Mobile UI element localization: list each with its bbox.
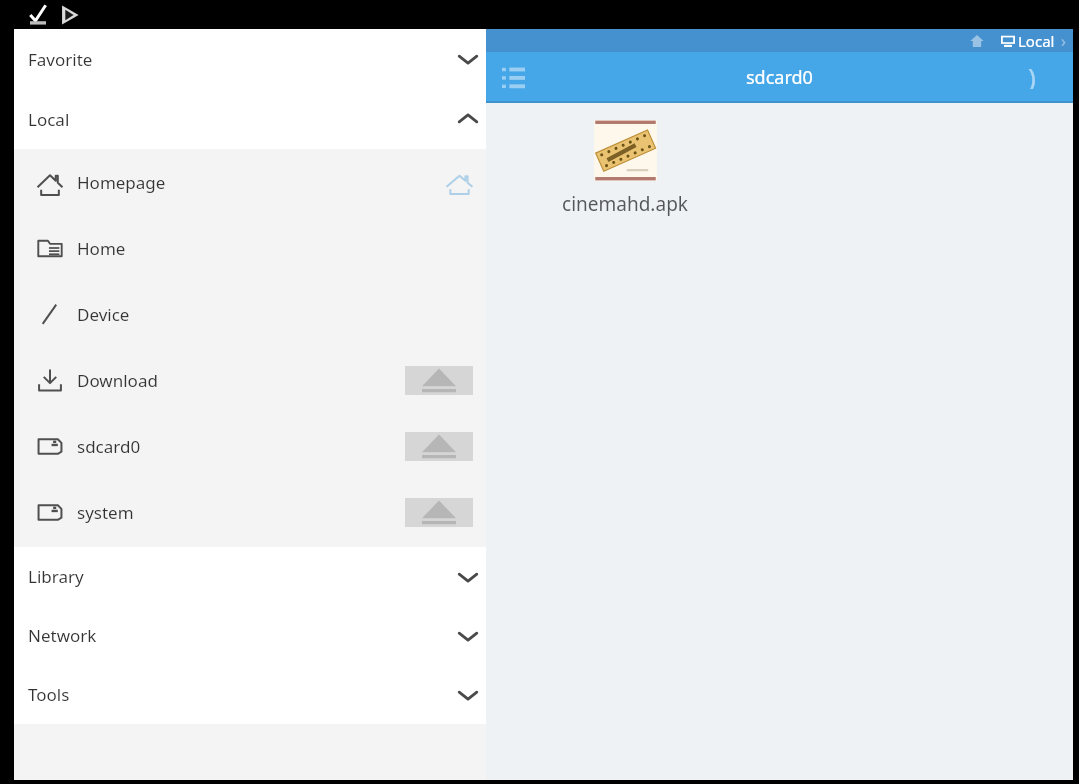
button[interactable]: system [14, 479, 486, 545]
button[interactable]: Home [967, 31, 987, 51]
staticText: sdcard0 [746, 65, 813, 90]
staticText: Device [77, 303, 130, 326]
staticText: Network [28, 624, 97, 647]
button[interactable]: Eject [405, 498, 473, 527]
staticText: ) [1028, 59, 1036, 89]
button[interactable]: Device [14, 281, 486, 347]
staticText: Local [28, 108, 70, 131]
staticText: Local [1018, 31, 1055, 51]
staticText: sdcard0 [77, 435, 141, 458]
button[interactable]: Home [14, 215, 486, 281]
staticText: Homepage [77, 171, 166, 194]
button[interactable]: Network [14, 606, 486, 665]
button[interactable]: More options [1017, 59, 1047, 89]
staticText: Home [77, 237, 126, 260]
button[interactable]: Local [14, 89, 486, 149]
button[interactable]: Local [1001, 31, 1055, 51]
staticText: Tools [28, 683, 70, 706]
button[interactable]: Tools [14, 665, 486, 724]
button[interactable]: Eject [405, 432, 473, 461]
button[interactable]: sdcard0 [14, 413, 486, 479]
button[interactable]: Download [14, 347, 486, 413]
button[interactable]: Change view [501, 65, 526, 90]
button[interactable]: cinemahd.apk [557, 120, 693, 217]
staticText: cinemahd.apk [562, 191, 688, 217]
staticText: › [1061, 30, 1066, 52]
staticText: Favorite [28, 48, 93, 71]
button[interactable]: Favorite [14, 29, 486, 89]
staticText: system [77, 501, 134, 524]
button[interactable]: Eject [405, 366, 473, 395]
staticText: Download [77, 369, 158, 392]
button[interactable]: Homepage [14, 149, 486, 215]
button[interactable]: Library [14, 547, 486, 606]
staticText: Library [28, 565, 84, 588]
